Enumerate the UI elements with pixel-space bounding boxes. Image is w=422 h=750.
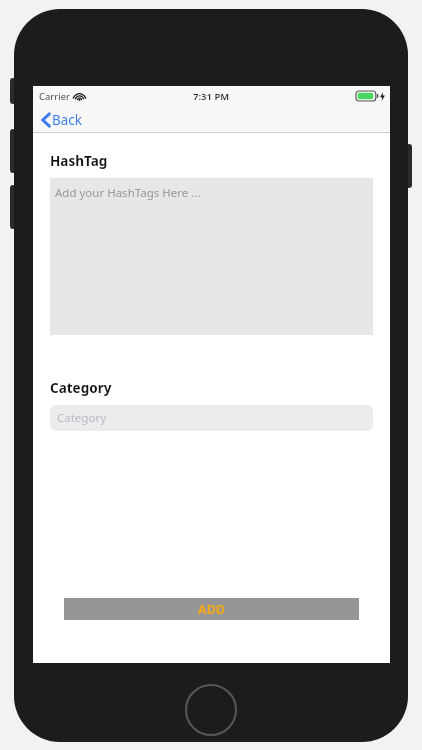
- staticText: Category: [50, 379, 112, 397]
- staticText: Carrier: [39, 90, 70, 103]
- button[interactable]: Add your HashTags Here ...: [50, 178, 373, 335]
- button[interactable]: Back: [39, 108, 86, 132]
- other: Back: [42, 113, 50, 127]
- button[interactable]: ADD: [64, 598, 359, 620]
- staticText: ADD: [198, 601, 225, 618]
- staticText: Category: [57, 410, 107, 426]
- staticText: 7:31 PM: [193, 90, 230, 103]
- staticText: HashTag: [50, 152, 108, 170]
- staticText: Back: [52, 111, 83, 129]
- button[interactable]: Category: [50, 405, 373, 431]
- staticText: Add your HashTags Here ...: [55, 185, 201, 201]
